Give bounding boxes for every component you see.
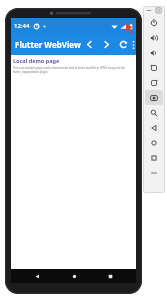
button[interactable]: More options (132, 36, 135, 53)
button[interactable]: Volume up (145, 30, 163, 45)
button[interactable]: Screenshot (145, 90, 163, 105)
button[interactable]: Rotate left (145, 60, 163, 75)
button[interactable]: Back (81, 36, 98, 53)
button[interactable]: Recent apps (100, 269, 120, 283)
staticText: Flutter WebView (15, 39, 81, 50)
button[interactable]: Back (27, 269, 47, 283)
button[interactable]: Rotate right (145, 75, 163, 90)
button[interactable]: Forward (98, 36, 115, 53)
button[interactable]: Overview (145, 150, 163, 165)
staticText: This is an example page used to demonstr… (13, 66, 134, 73)
button[interactable]: Back (145, 120, 163, 135)
button[interactable]: Home (145, 135, 163, 150)
button[interactable]: Reload (115, 36, 132, 53)
button[interactable]: Home (64, 269, 84, 283)
button[interactable]: Local demo page (13, 57, 60, 64)
button[interactable]: More (145, 165, 163, 180)
button[interactable]: Zoom (145, 105, 163, 120)
button[interactable]: Volume down (145, 45, 163, 60)
staticText: Local demo page (13, 57, 60, 64)
button[interactable]: Power (145, 15, 163, 30)
staticText: 12:44 (14, 22, 30, 30)
